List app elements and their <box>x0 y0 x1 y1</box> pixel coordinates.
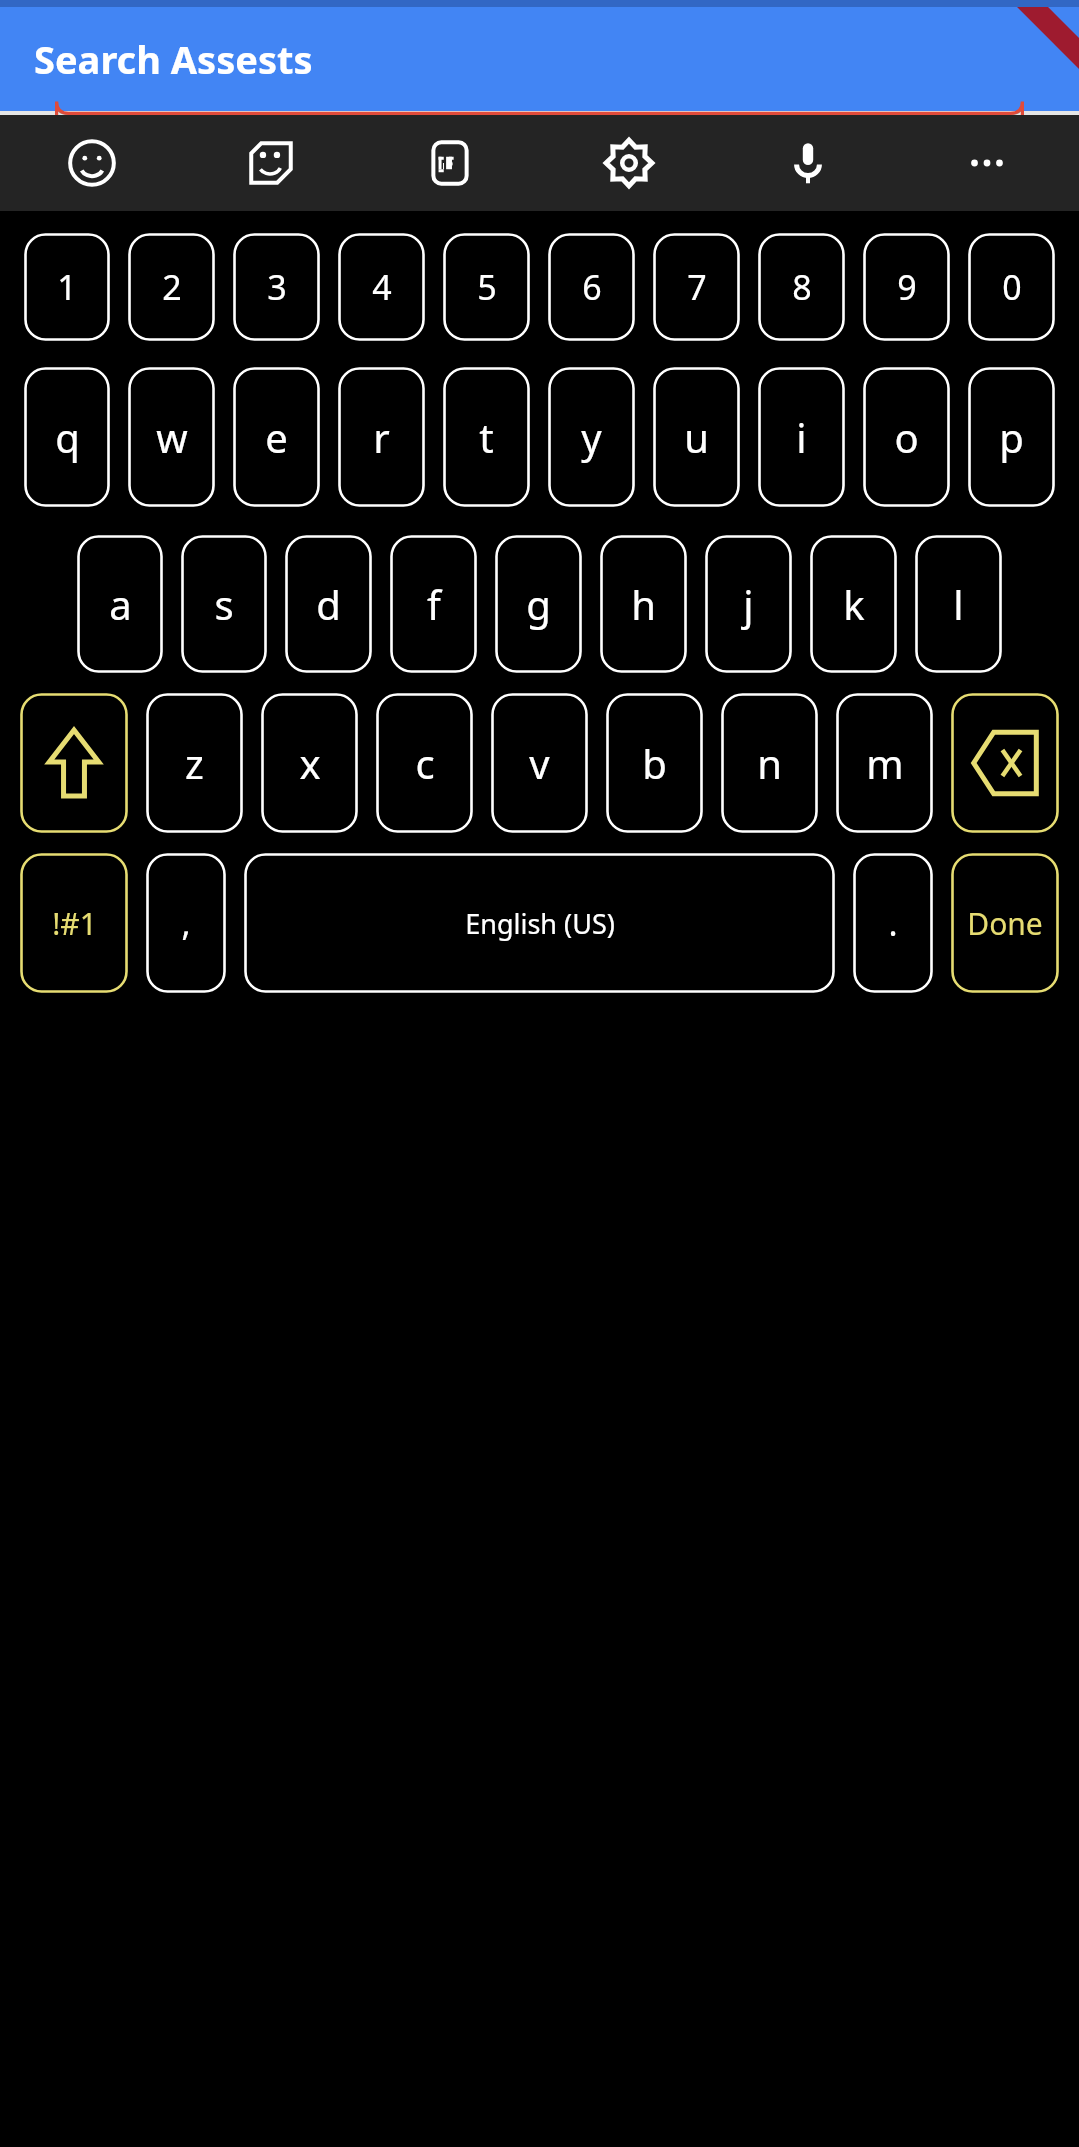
button[interactable]: 4 <box>338 233 425 341</box>
button[interactable]: p <box>968 367 1055 507</box>
staticText: m <box>866 736 904 790</box>
button[interactable]: 8 <box>758 233 845 341</box>
staticText: c <box>415 736 435 790</box>
staticText: b <box>642 736 667 790</box>
button[interactable]: . <box>853 853 933 993</box>
staticText: 7 <box>687 264 707 310</box>
button[interactable]: !#1 <box>20 853 128 993</box>
staticText: o <box>894 410 919 464</box>
staticText: 5 <box>477 264 497 310</box>
staticText: . <box>888 900 898 946</box>
button[interactable]: Shift <box>20 693 128 833</box>
button[interactable]: r <box>338 367 425 507</box>
staticText: p <box>999 410 1024 464</box>
staticText: 9 <box>897 264 917 310</box>
button[interactable]: n <box>721 693 818 833</box>
button[interactable]: s <box>181 535 267 673</box>
staticText: w <box>156 410 188 464</box>
button[interactable]: 7 <box>653 233 740 341</box>
staticText: e <box>265 410 288 464</box>
staticText: r <box>373 410 390 464</box>
staticText: s <box>214 577 234 631</box>
staticText: a <box>109 577 132 631</box>
staticText: 2 <box>162 264 182 310</box>
button[interactable]: 5 <box>443 233 530 341</box>
staticText: Search Assests <box>34 33 313 85</box>
button[interactable]: e <box>233 367 320 507</box>
button[interactable]: u <box>653 367 740 507</box>
button[interactable]: GIF <box>418 131 482 195</box>
button[interactable]: Voice input <box>776 131 840 195</box>
button[interactable]: k <box>810 535 897 673</box>
button[interactable]: h <box>600 535 687 673</box>
staticText: 8 <box>792 264 812 310</box>
button[interactable]: y <box>548 367 635 507</box>
button[interactable]: w <box>128 367 215 507</box>
button[interactable]: z <box>146 693 243 833</box>
staticText: j <box>743 577 754 631</box>
staticText: u <box>684 410 709 464</box>
button[interactable]: o <box>863 367 950 507</box>
button[interactable]: x <box>261 693 358 833</box>
button[interactable]: Emoji <box>60 131 124 195</box>
staticText: y <box>581 410 602 464</box>
button[interactable]: Backspace <box>951 693 1059 833</box>
button[interactable]: Settings <box>597 131 661 195</box>
staticText: g <box>526 577 551 631</box>
staticText: h <box>631 577 656 631</box>
button[interactable]: 9 <box>863 233 950 341</box>
button[interactable]: 1 <box>24 233 110 341</box>
button[interactable]: 6 <box>548 233 635 341</box>
button[interactable]: f <box>390 535 477 673</box>
staticText: !#1 <box>52 903 97 944</box>
staticText: k <box>843 577 865 631</box>
button[interactable]: , <box>146 853 226 993</box>
staticText: l <box>953 577 964 631</box>
button[interactable]: j <box>705 535 792 673</box>
button[interactable]: 3 <box>233 233 320 341</box>
staticText: d <box>316 577 341 631</box>
button[interactable]: g <box>495 535 582 673</box>
button[interactable]: a <box>77 535 163 673</box>
staticText: q <box>55 410 80 464</box>
button[interactable]: m <box>836 693 933 833</box>
button[interactable]: Done <box>951 853 1059 993</box>
staticText: z <box>185 736 204 790</box>
staticText: , <box>181 900 191 946</box>
staticText: 1 <box>57 264 77 310</box>
staticText: 4 <box>372 264 392 310</box>
staticText: x <box>299 736 321 790</box>
button[interactable]: q <box>24 367 110 507</box>
button[interactable]: 2 <box>128 233 215 341</box>
staticText: n <box>757 736 782 790</box>
button[interactable]: English (US) <box>244 853 835 993</box>
staticText: 3 <box>267 264 287 310</box>
staticText: English (US) <box>465 905 615 942</box>
staticText: Done <box>967 903 1043 944</box>
staticText: v <box>529 736 550 790</box>
button[interactable]: 0 <box>968 233 1055 341</box>
staticText: t <box>479 410 494 464</box>
staticText: 0 <box>1002 264 1022 310</box>
staticText: i <box>796 410 807 464</box>
button[interactable]: b <box>606 693 703 833</box>
button[interactable]: Stickers <box>239 131 303 195</box>
staticText: f <box>427 577 441 631</box>
button[interactable]: More options <box>955 131 1019 195</box>
button[interactable]: i <box>758 367 845 507</box>
button[interactable]: l <box>915 535 1002 673</box>
button[interactable]: d <box>285 535 372 673</box>
button[interactable]: c <box>376 693 473 833</box>
button[interactable]: t <box>443 367 530 507</box>
button[interactable]: v <box>491 693 588 833</box>
staticText: 6 <box>582 264 602 310</box>
